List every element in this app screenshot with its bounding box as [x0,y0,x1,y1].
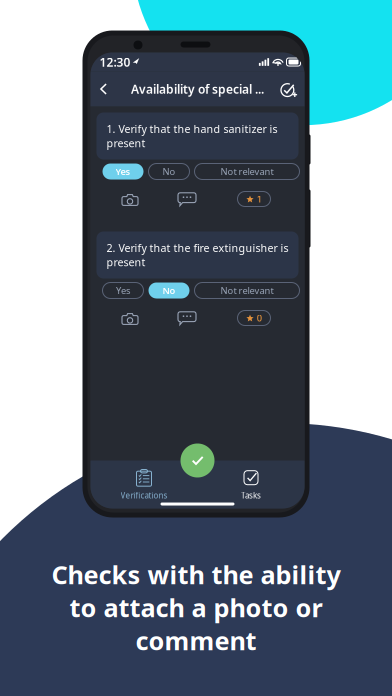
button[interactable]: No [148,163,189,179]
button[interactable]: Yes [102,282,143,298]
button[interactable]: 0 [237,310,270,325]
button[interactable]: Attach photo [122,313,138,325]
staticText: 1 [257,193,262,205]
button[interactable]: Back [92,78,114,100]
button[interactable]: Not relevant [194,282,299,298]
staticText: Yes [115,165,130,178]
staticText: Availability of special ... [131,81,264,97]
button[interactable]: Add check [279,80,297,98]
staticText: 0 [257,312,262,324]
button[interactable]: Yes [102,163,143,179]
staticText: 2. Verify that the fire extinguisher is … [106,241,288,269]
staticText: Not relevant [220,284,273,297]
staticText: Verifications [120,490,167,501]
staticText: Checks with the ability [51,558,340,591]
staticText: No [162,284,175,297]
staticText: 12:30 [99,54,130,70]
staticText: comment [135,624,256,657]
button[interactable]: Tasks [197,469,304,501]
staticText: Yes [116,284,130,297]
button[interactable]: No [148,282,189,298]
button[interactable]: Add comment [178,192,196,206]
staticText: Not relevant [220,165,273,178]
staticText: to attach a photo or [69,591,322,624]
button[interactable]: Add comment [178,311,196,325]
staticText: 1. Verify that the hand sanitizer is pre… [106,122,277,150]
button[interactable]: Verifications [90,469,197,501]
staticText: No [162,165,175,178]
button[interactable]: Attach photo [122,194,138,206]
button[interactable]: Not relevant [194,163,299,179]
button[interactable]: 1 [237,191,270,206]
staticText: Tasks [241,490,261,501]
